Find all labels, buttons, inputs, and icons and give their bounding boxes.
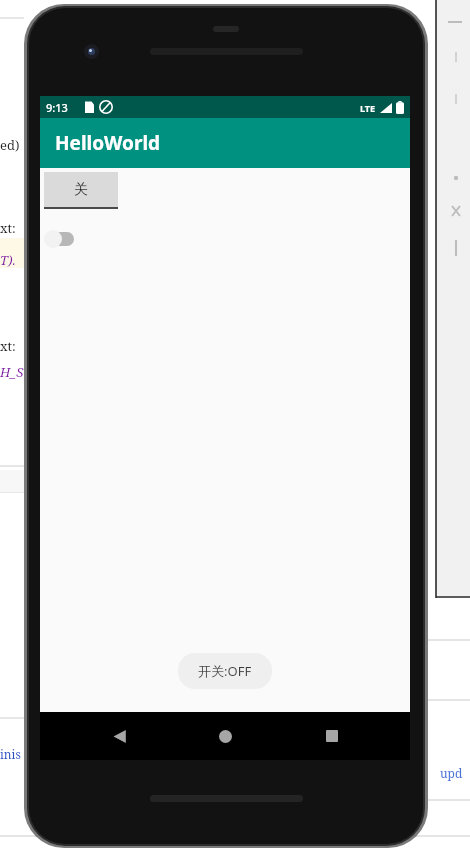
staticText: ed) <box>0 136 20 154</box>
staticText: xt: <box>0 337 16 355</box>
staticText: inis <box>0 746 21 762</box>
staticText: xt: <box>0 219 16 237</box>
staticText: upd <box>440 765 463 781</box>
button[interactable]: Toggle switch, off <box>44 226 82 252</box>
staticText: 9:13 <box>46 100 68 115</box>
button[interactable]: 关 <box>44 172 118 210</box>
staticText: T). <box>0 251 16 269</box>
button[interactable]: Recent apps <box>304 712 360 760</box>
staticText: 关 <box>74 181 88 199</box>
staticText: 开关:OFF <box>198 662 252 680</box>
button[interactable]: Home <box>197 712 253 760</box>
button[interactable]: Back <box>91 712 147 760</box>
staticText: LTE <box>360 102 376 114</box>
staticText: HelloWorld <box>55 130 161 156</box>
staticText: H_S <box>0 363 24 381</box>
